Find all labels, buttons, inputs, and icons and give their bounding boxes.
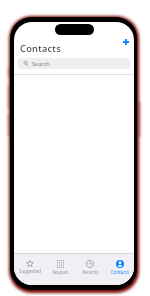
- staticText: Contacts: [111, 269, 129, 275]
- staticText: Keypad: [52, 269, 68, 275]
- button[interactable]: Contacts: [104, 254, 134, 285]
- staticText: Search: [32, 60, 50, 68]
- button[interactable]: Keypad: [44, 254, 74, 285]
- button[interactable]: Search: [18, 58, 130, 69]
- staticText: Contacts: [20, 42, 61, 55]
- staticText: Recents: [82, 269, 99, 275]
- button[interactable]: Recents: [74, 254, 104, 285]
- button[interactable]: Contacts: [20, 41, 61, 55]
- button[interactable]: Suggested: [14, 254, 44, 285]
- staticText: Suggested: [19, 268, 41, 274]
- button[interactable]: Add contact: [119, 35, 133, 49]
